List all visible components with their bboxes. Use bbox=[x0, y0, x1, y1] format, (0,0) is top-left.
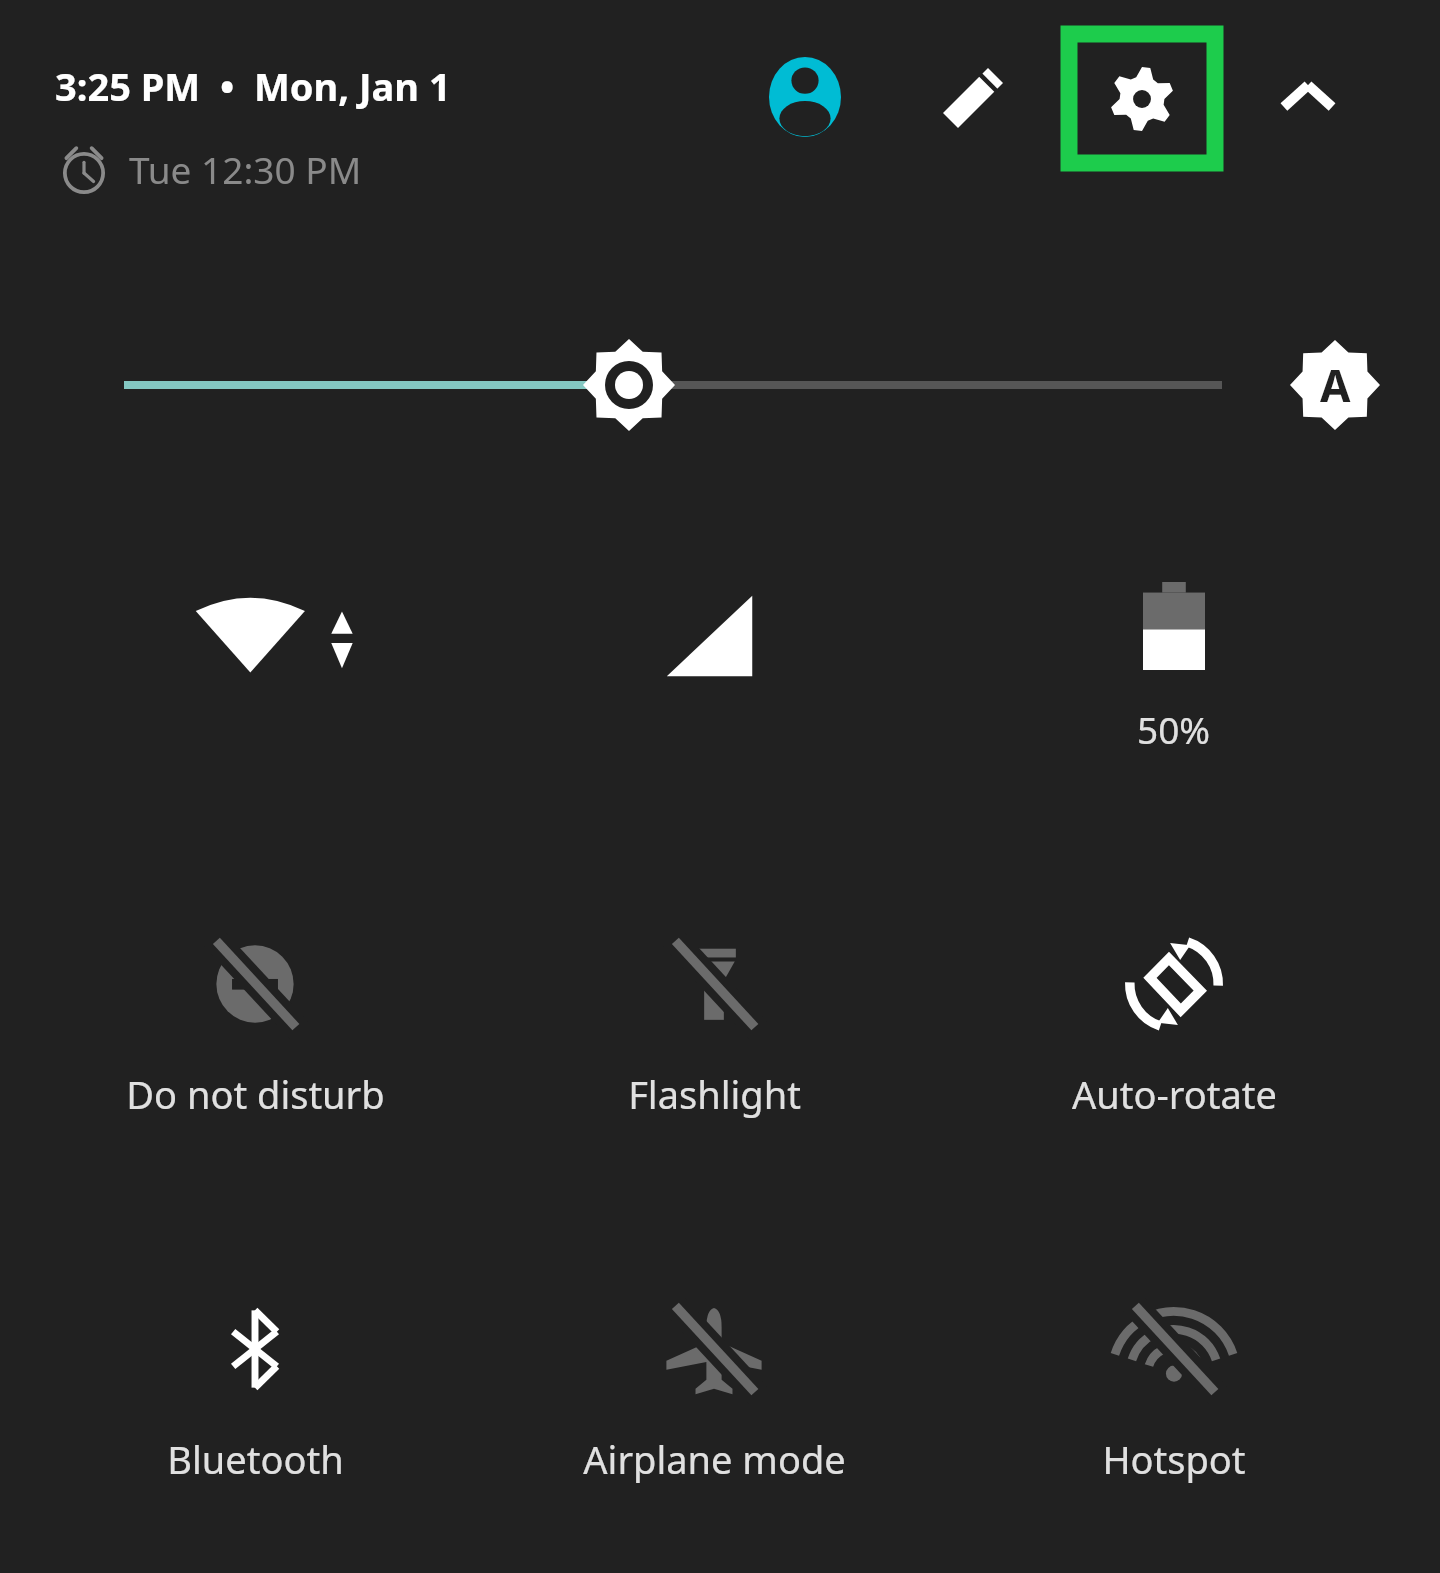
staticText: Airplane mode bbox=[583, 1433, 846, 1485]
button[interactable]: Flashlight bbox=[559, 928, 869, 1120]
button[interactable]: Wi-Fi bbox=[185, 578, 380, 683]
staticText: Auto-rotate bbox=[1072, 1068, 1277, 1120]
button[interactable]: Battery 50 percent bbox=[1098, 582, 1250, 754]
button[interactable]: Settings bbox=[1069, 34, 1215, 163]
staticText: Hotspot bbox=[1102, 1433, 1246, 1485]
staticText: Bluetooth bbox=[167, 1433, 344, 1485]
button[interactable] bbox=[0, 333, 1440, 437]
button[interactable]: Edit tiles bbox=[930, 55, 1016, 141]
button[interactable]: 3:25 PM • Mon, Jan 1 bbox=[55, 60, 451, 112]
button[interactable]: Auto brightness bbox=[1288, 338, 1382, 432]
staticText: 50% bbox=[1137, 704, 1211, 754]
button[interactable]: Auto-rotate bbox=[1019, 928, 1329, 1120]
button[interactable]: User profile bbox=[765, 57, 845, 137]
button[interactable]: Do not disturb bbox=[100, 928, 410, 1120]
staticText: Do not disturb bbox=[126, 1068, 385, 1120]
button[interactable]: Airplane mode bbox=[559, 1293, 869, 1485]
button[interactable]: Hotspot bbox=[1019, 1293, 1329, 1485]
button[interactable]: Collapse bbox=[1266, 56, 1350, 140]
button[interactable]: Tue 12:30 PM bbox=[55, 140, 362, 198]
staticText: A bbox=[1320, 355, 1351, 415]
staticText: Flashlight bbox=[628, 1068, 801, 1120]
staticText: Tue 12:30 PM bbox=[129, 144, 362, 194]
button[interactable]: Mobile signal bbox=[662, 588, 758, 684]
button[interactable]: Bluetooth bbox=[100, 1293, 410, 1485]
staticText: 3:25 PM • Mon, Jan 1 bbox=[55, 60, 451, 112]
